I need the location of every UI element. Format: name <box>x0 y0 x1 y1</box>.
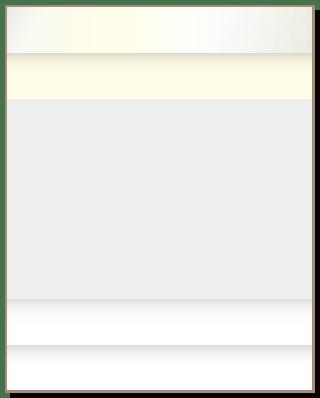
button[interactable]: Home <box>7 345 108 390</box>
button[interactable]: Library <box>108 345 210 390</box>
button[interactable] <box>7 53 312 99</box>
button[interactable]: Search <box>228 7 272 53</box>
button[interactable] <box>7 299 159 345</box>
button[interactable]: Profile <box>210 345 312 390</box>
button[interactable]: Navigate up <box>7 7 55 53</box>
button[interactable] <box>55 7 228 53</box>
button[interactable]: More options <box>272 7 312 53</box>
button[interactable] <box>159 299 312 345</box>
